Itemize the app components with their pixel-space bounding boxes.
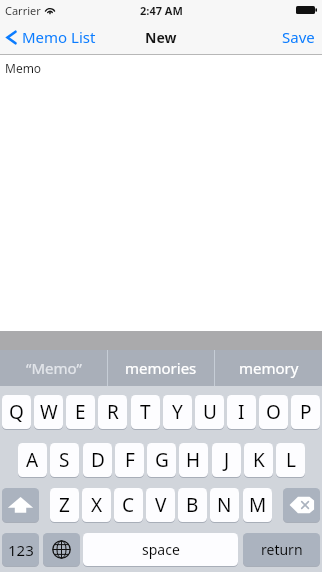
- staticText: Save: [282, 27, 315, 47]
- staticText: Carrier: [5, 3, 41, 18]
- staticText: C: [122, 492, 135, 518]
- staticText: Y: [172, 399, 183, 425]
- button[interactable]: V: [146, 488, 175, 523]
- button[interactable]: Save: [282, 27, 315, 47]
- staticText: K: [253, 447, 265, 473]
- button[interactable]: X: [82, 488, 111, 523]
- staticText: P: [300, 399, 312, 425]
- staticText: J: [224, 447, 230, 473]
- staticText: U: [203, 399, 217, 425]
- button[interactable]: P: [291, 395, 320, 430]
- button[interactable]: Y: [163, 395, 192, 430]
- button[interactable]: return: [243, 533, 320, 567]
- staticText: O: [266, 399, 281, 425]
- button[interactable]: D: [83, 443, 112, 478]
- staticText: M: [249, 492, 267, 518]
- staticText: N: [217, 492, 232, 518]
- staticText: Z: [59, 492, 70, 518]
- button[interactable]: N: [210, 488, 239, 523]
- staticText: Q: [9, 399, 24, 425]
- staticText: “Memo”: [26, 358, 82, 378]
- button[interactable]: C: [114, 488, 143, 523]
- staticText: D: [91, 447, 105, 473]
- staticText: return: [261, 540, 303, 559]
- button[interactable]: Backspace: [283, 488, 320, 523]
- staticText: E: [75, 399, 86, 425]
- button[interactable]: S: [50, 443, 79, 478]
- staticText: Memo: [5, 60, 42, 76]
- button[interactable]: H: [179, 443, 208, 478]
- button[interactable]: “Memo”: [0, 350, 107, 386]
- staticText: 2:47 AM: [140, 3, 183, 18]
- button[interactable]: E: [66, 395, 95, 430]
- button[interactable]: G: [147, 443, 176, 478]
- staticText: G: [155, 447, 169, 473]
- button[interactable]: L: [276, 443, 305, 478]
- staticText: memory: [239, 358, 299, 378]
- button[interactable]: Q: [2, 395, 31, 430]
- button[interactable]: Memo List: [4, 20, 96, 54]
- staticText: A: [26, 447, 39, 473]
- button[interactable]: A: [18, 443, 47, 478]
- staticText: I: [238, 399, 245, 425]
- staticText: New: [145, 28, 177, 47]
- staticText: X: [91, 492, 103, 518]
- staticText: memories: [125, 358, 197, 378]
- button[interactable]: I: [227, 395, 256, 430]
- button[interactable]: W: [34, 395, 63, 430]
- staticText: H: [186, 447, 201, 473]
- button[interactable]: F: [115, 443, 144, 478]
- staticText: space: [142, 540, 180, 559]
- button[interactable]: memories: [108, 350, 214, 386]
- button[interactable]: 123: [2, 533, 39, 567]
- staticText: 123: [8, 540, 34, 560]
- button[interactable]: T: [131, 395, 160, 430]
- button[interactable]: Next keyboard: [43, 533, 80, 567]
- staticText: R: [107, 399, 119, 425]
- button[interactable]: K: [244, 443, 273, 478]
- button[interactable]: U: [195, 395, 224, 430]
- button[interactable]: Shift: [2, 488, 39, 523]
- button[interactable]: space: [83, 533, 238, 567]
- button[interactable]: B: [178, 488, 207, 523]
- staticText: L: [286, 447, 296, 473]
- staticText: S: [59, 447, 70, 473]
- button[interactable]: memory: [215, 350, 322, 386]
- staticText: V: [155, 492, 167, 518]
- staticText: T: [140, 399, 151, 425]
- staticText: F: [125, 447, 135, 473]
- button[interactable]: R: [98, 395, 127, 430]
- staticText: W: [40, 399, 58, 425]
- button[interactable]: J: [212, 443, 241, 478]
- staticText: Memo List: [22, 27, 96, 47]
- button[interactable]: Z: [50, 488, 79, 523]
- button[interactable]: O: [259, 395, 288, 430]
- staticText: B: [186, 492, 199, 518]
- button[interactable]: M: [243, 488, 272, 523]
